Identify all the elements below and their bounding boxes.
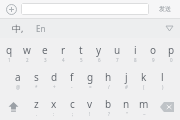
staticText: ( xyxy=(143,84,145,90)
staticText: # xyxy=(125,84,128,90)
staticText: g xyxy=(87,70,94,84)
button[interactable]: z xyxy=(27,93,45,120)
button[interactable]: k xyxy=(135,66,153,93)
button[interactable]: Backspace xyxy=(153,93,180,120)
staticText: m xyxy=(139,97,149,111)
button[interactable]: En xyxy=(36,18,76,38)
staticText: l xyxy=(161,70,164,84)
staticText: w xyxy=(23,43,31,57)
button[interactable]: f xyxy=(63,66,81,93)
staticText: p xyxy=(168,43,175,57)
button[interactable]: o xyxy=(144,39,162,66)
staticText: e xyxy=(42,43,48,57)
staticText: 1 xyxy=(8,57,11,63)
staticText: i xyxy=(134,43,137,57)
button[interactable]: b xyxy=(99,93,117,120)
staticText: 中, xyxy=(12,22,24,34)
staticText: f xyxy=(70,70,74,84)
staticText: 6 xyxy=(98,57,101,63)
button[interactable]: x xyxy=(45,93,63,120)
button[interactable]: e xyxy=(36,39,54,66)
button[interactable]: c xyxy=(63,93,81,120)
staticText: ~ xyxy=(143,111,146,117)
staticText: " xyxy=(126,111,128,117)
staticText: t xyxy=(79,43,83,57)
staticText: : xyxy=(53,111,55,117)
staticText: @ xyxy=(16,84,21,90)
button[interactable]: g xyxy=(81,66,99,93)
button[interactable]: j xyxy=(117,66,135,93)
staticText: = xyxy=(89,84,92,90)
staticText: q xyxy=(6,43,13,57)
button[interactable]: 中, xyxy=(0,18,36,38)
staticText: * xyxy=(35,84,38,90)
button[interactable]: i xyxy=(126,39,144,66)
button[interactable]: p xyxy=(162,39,180,66)
staticText: u xyxy=(114,43,121,57)
staticText: a xyxy=(15,70,21,84)
staticText: / xyxy=(108,84,110,90)
staticText: 0 xyxy=(170,57,173,63)
staticText: ! xyxy=(89,111,91,117)
button[interactable]: y xyxy=(90,39,108,66)
button[interactable]: Add attachment xyxy=(3,1,19,17)
button[interactable]: d xyxy=(45,66,63,93)
button[interactable]: h xyxy=(99,66,117,93)
button[interactable]: t xyxy=(72,39,90,66)
staticText: d xyxy=(51,70,58,84)
staticText: h xyxy=(105,70,112,84)
staticText: j xyxy=(125,70,128,84)
staticText: - xyxy=(71,84,73,90)
button[interactable]: r xyxy=(54,39,72,66)
button[interactable]: Hide keyboard xyxy=(158,18,180,38)
button[interactable]: Shift xyxy=(0,93,27,120)
staticText: o xyxy=(150,43,157,57)
staticText: . xyxy=(36,111,38,117)
button[interactable]: u xyxy=(108,39,126,66)
staticText: ; xyxy=(72,111,74,117)
staticText: 3 xyxy=(44,57,47,63)
staticText: x xyxy=(51,97,57,111)
staticText: 4 xyxy=(62,57,65,63)
staticText: En xyxy=(36,23,46,34)
button[interactable]: q xyxy=(0,39,18,66)
staticText: b xyxy=(105,97,112,111)
button[interactable]: w xyxy=(18,39,36,66)
staticText: ? xyxy=(108,111,110,117)
staticText: z xyxy=(34,97,39,111)
staticText: ) xyxy=(162,84,164,90)
staticText: s xyxy=(34,70,39,84)
staticText: r xyxy=(61,43,66,57)
staticText: 2 xyxy=(26,57,29,63)
button[interactable]: l xyxy=(153,66,171,93)
button[interactable]: v xyxy=(81,93,99,120)
staticText: v xyxy=(87,97,93,111)
button[interactable] xyxy=(21,3,149,15)
staticText: 8 xyxy=(134,57,137,63)
staticText: 9 xyxy=(152,57,155,63)
staticText: 5 xyxy=(80,57,83,63)
button[interactable]: a xyxy=(9,66,27,93)
staticText: y xyxy=(96,43,102,57)
staticText: + xyxy=(53,84,56,90)
staticText: c xyxy=(70,97,75,111)
button[interactable]: s xyxy=(27,66,45,93)
staticText: 发送 xyxy=(159,5,171,13)
staticText: k xyxy=(141,70,147,84)
button[interactable]: 发送 xyxy=(153,1,177,17)
staticText: n xyxy=(123,97,130,111)
staticText: 7 xyxy=(116,57,119,63)
button[interactable]: n xyxy=(117,93,135,120)
button[interactable]: m xyxy=(135,93,153,120)
